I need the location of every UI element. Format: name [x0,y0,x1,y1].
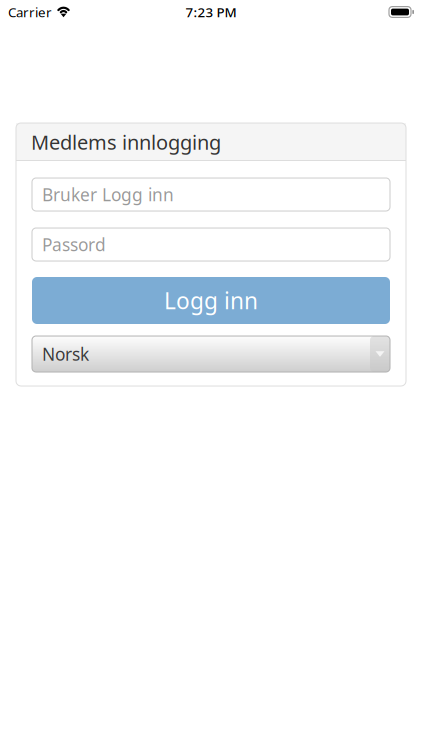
button[interactable]: Norsk [32,336,390,372]
button[interactable]: Logg inn [32,277,390,324]
staticText: 7:23 PM [185,3,236,21]
staticText: Carrier [8,3,52,21]
staticText: Bruker Logg inn [42,183,174,206]
staticText: Medlems innlogging [31,129,221,155]
staticText: Norsk [42,342,89,365]
staticText: Passord [42,233,106,256]
staticText: Logg inn [164,285,258,315]
